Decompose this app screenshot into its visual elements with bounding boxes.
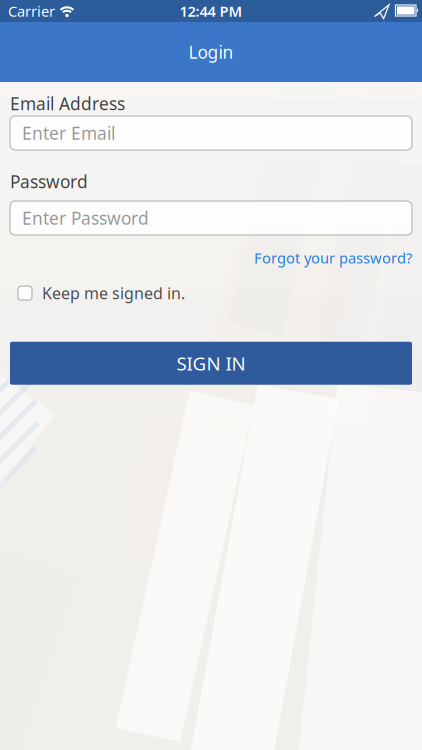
staticText: Password (10, 170, 88, 193)
staticText: Login (188, 40, 233, 63)
button[interactable]: Forgot your password? (254, 248, 412, 267)
button[interactable]: Enter Email (10, 116, 412, 150)
staticText: Enter Email (22, 121, 115, 144)
staticText: Keep me signed in. (42, 282, 185, 304)
button[interactable]: Keep me signed in. (10, 282, 185, 304)
staticText: Email Address (10, 92, 125, 115)
staticText: 12:44 PM (179, 1, 242, 21)
staticText: Enter Password (22, 206, 149, 229)
button[interactable]: Enter Password (10, 201, 412, 235)
button[interactable]: SIGN IN (10, 342, 412, 385)
staticText: Forgot your password? (254, 248, 412, 267)
staticText: Carrier (8, 1, 55, 21)
staticText: SIGN IN (176, 351, 245, 376)
